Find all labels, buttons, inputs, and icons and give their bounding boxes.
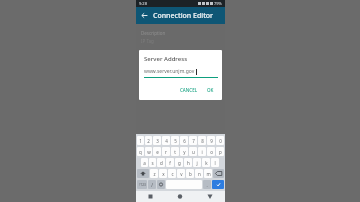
staticText: i [201,149,203,155]
button[interactable]: d [157,158,165,167]
staticText: 8 [201,138,204,144]
button[interactable]: Home [165,191,195,202]
button[interactable]: i [198,147,206,156]
button[interactable]: a [141,158,148,167]
button[interactable]: z [150,169,158,178]
button[interactable]: Backspace [213,169,224,178]
button[interactable]: g [175,158,183,167]
button[interactable]: u [189,147,197,156]
button[interactable]: Recents [136,191,165,202]
staticText: 2 [147,138,150,144]
button[interactable]: OK [205,85,216,95]
staticText: 7 [192,138,195,144]
staticText: n [198,171,201,177]
button[interactable]: e [153,147,161,156]
staticText: . [206,182,208,188]
staticText: d [160,160,163,166]
button[interactable]: 7 [189,136,197,145]
staticText: u [192,149,195,155]
button[interactable]: 2 [145,136,152,145]
staticText: q [139,149,142,155]
staticText: 4 [165,138,168,144]
button[interactable]: Description [141,29,220,45]
staticText: Connection Editor [153,11,214,21]
button[interactable]: v [177,169,185,178]
button[interactable]: q [137,147,144,156]
staticText: www.server.unjm.gov [144,68,195,75]
staticText: f [169,160,171,166]
staticText: l [214,160,216,166]
button[interactable]: k [202,158,210,167]
button[interactable]: c [168,169,176,178]
button[interactable]: Shift [137,169,149,178]
staticText: Description [141,30,166,36]
staticText: 3 [156,138,159,144]
button[interactable]: t [171,147,179,156]
button[interactable]: 6 [180,136,188,145]
button[interactable]: 4 [162,136,170,145]
staticText: m [206,171,211,177]
staticText: b [189,171,192,177]
button[interactable]: n [195,169,203,178]
button[interactable]: 3 [153,136,161,145]
button[interactable]: 1 [137,136,144,145]
staticText: Server Address [141,52,173,58]
staticText: CANCEL [180,87,198,93]
staticText: v [180,171,183,177]
staticText: IP Tag [141,38,154,44]
button[interactable]: / [148,180,156,189]
button[interactable]: h [184,158,192,167]
button[interactable]: Enter [212,180,224,189]
staticText: Account [141,74,159,80]
button[interactable]: Emoji [157,180,165,189]
staticText: / [151,182,153,188]
button[interactable]: 9 [207,136,215,145]
staticText: OK [207,87,214,93]
staticText: o [210,149,213,155]
button[interactable]: j [193,158,201,167]
staticText: Server Address [144,55,188,63]
staticText: y [183,149,186,155]
staticText: g [178,160,181,166]
staticText: 5 [174,138,177,144]
button[interactable]: l [211,158,219,167]
button[interactable]: f [166,158,174,167]
button[interactable]: 0 [216,136,224,145]
button[interactable]: Server Address [141,51,220,67]
staticText: a [143,160,146,166]
button[interactable]: b [186,169,194,178]
staticText: 1 [139,138,142,144]
button[interactable]: . [203,180,211,189]
button[interactable]: p [216,147,224,156]
button[interactable]: r [162,147,170,156]
staticText: x [162,171,165,177]
button[interactable]: m [204,169,212,178]
staticText: 0 [219,138,222,144]
button[interactable]: Account [141,73,220,89]
button[interactable]: Back [195,191,225,202]
staticText: z [153,171,156,177]
button[interactable]: Navigate up [138,9,151,22]
staticText: k [205,160,208,166]
staticText: ?123 [139,183,146,187]
button[interactable]: 5 [171,136,179,145]
staticText: p [219,149,222,155]
staticText: e [156,149,159,155]
button[interactable]: ?123 [137,180,147,189]
staticText: s [151,160,154,166]
staticText: h [187,160,190,166]
staticText: t [174,149,176,155]
button[interactable]: CANCEL [178,85,200,95]
staticText: 9 [210,138,213,144]
staticText: w [147,149,151,155]
button[interactable]: w [145,147,152,156]
button[interactable]: o [207,147,215,156]
button[interactable]: x [159,169,167,178]
staticText: Not Set [141,60,157,66]
button[interactable]: 8 [198,136,206,145]
button[interactable]: s [149,158,156,167]
button[interactable]: y [180,147,188,156]
staticText: 79% [214,1,222,6]
